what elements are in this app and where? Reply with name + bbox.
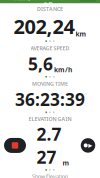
staticText: km/h: [54, 65, 72, 74]
staticText: 202,24: [14, 13, 75, 40]
staticText: km: [75, 30, 86, 38]
button[interactable]: Live Tracking: [3, 0, 32, 2]
staticText: 36:23:39: [15, 88, 85, 111]
staticText: ▶: [88, 142, 92, 148]
staticText: AVERAGE SPEED: [30, 45, 69, 52]
staticText: ELEVATION GAIN: [28, 115, 71, 122]
staticText: DISTANCE: [37, 5, 63, 13]
button[interactable]: Stop recording: [2, 137, 28, 153]
staticText: MOVING TIME: [32, 80, 68, 87]
staticText: 18:00:05: [43, 0, 69, 11]
button[interactable]: Show Elevation: [29, 172, 71, 178]
staticText: Show Elevation: [32, 173, 68, 178]
button[interactable]: Next: [78, 137, 98, 153]
staticText: 5,6: [28, 52, 53, 75]
button[interactable]: Map: [79, 0, 97, 1]
staticText: m: [62, 158, 69, 167]
staticText: 2.727: [37, 122, 62, 168]
staticText: Tracking: [13, 0, 30, 1]
